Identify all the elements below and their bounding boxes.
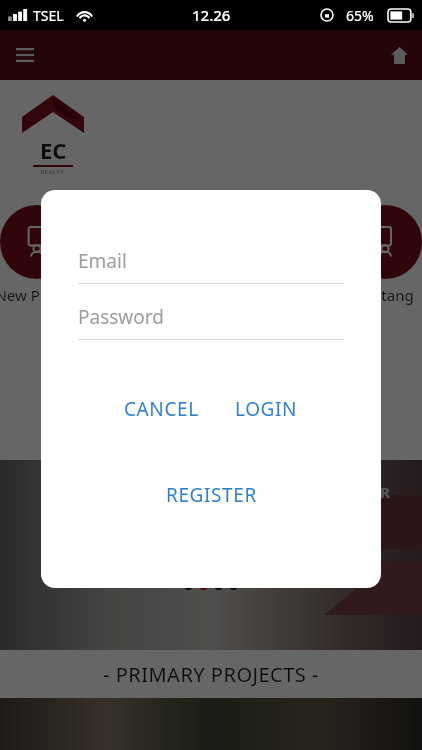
staticText: 65% <box>346 6 374 25</box>
button[interactable]: Email <box>78 248 344 284</box>
button[interactable]: New Project <box>0 205 92 305</box>
button[interactable]: REGISTER <box>156 476 267 514</box>
staticText: New Project <box>0 285 80 305</box>
staticText: 12.26 <box>192 5 231 25</box>
button[interactable] <box>214 581 223 590</box>
staticText: Email <box>78 248 127 274</box>
staticText: TSEL <box>33 6 64 25</box>
staticText: - PRIMARY PROJECTS - <box>103 661 319 688</box>
button[interactable]: Menu <box>8 38 42 72</box>
button[interactable]: Home <box>382 38 416 72</box>
button[interactable] <box>199 581 208 590</box>
button[interactable]: CANCEL <box>114 390 209 428</box>
button[interactable]: LOGIN <box>225 390 308 428</box>
staticText: REGISTER <box>166 482 257 508</box>
staticText: m <box>47 186 60 204</box>
staticText: CANCEL <box>124 396 199 422</box>
button[interactable]: Tentang <box>330 205 422 305</box>
button[interactable]: Password <box>78 304 344 340</box>
button[interactable] <box>229 581 238 590</box>
button[interactable] <box>184 581 193 590</box>
staticText: LOGIN <box>235 396 298 422</box>
staticText: REALTY <box>41 169 65 176</box>
staticText: MANAGER <box>305 482 392 502</box>
staticText: Password <box>78 304 164 330</box>
staticText: EC <box>40 135 67 165</box>
staticText: Tentang <box>356 285 414 305</box>
